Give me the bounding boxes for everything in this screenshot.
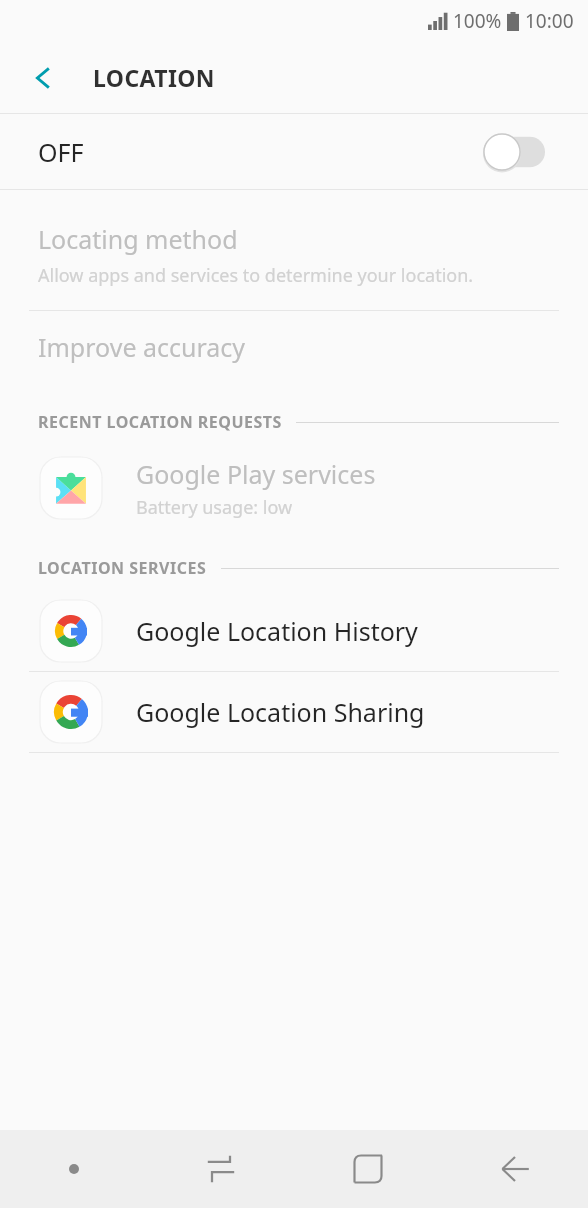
staticText: Locating method [38, 222, 238, 256]
staticText: Google Location History [136, 614, 418, 648]
button[interactable]: Google Location Sharing [0, 672, 588, 752]
button[interactable]: Locating method [0, 204, 588, 310]
staticText: Improve accuracy [38, 330, 246, 364]
staticText: 10:00 [525, 8, 574, 34]
staticText: LOCATION [93, 62, 215, 93]
staticText: Google Play services [136, 457, 376, 491]
staticText: Allow apps and services to determine you… [38, 263, 474, 288]
staticText: LOCATION SERVICES [38, 557, 207, 579]
staticText: OFF [38, 135, 84, 169]
button[interactable]: Home [294, 1130, 441, 1208]
button[interactable]: Recent apps [147, 1130, 294, 1208]
staticText: Google Location Sharing [136, 695, 425, 729]
button[interactable]: OFF [0, 114, 588, 189]
button[interactable]: Google Location History [0, 591, 588, 671]
button[interactable]: Google Play services [0, 445, 588, 531]
staticText: 100% [453, 8, 502, 34]
button[interactable]: Back [441, 1130, 588, 1208]
staticText: RECENT LOCATION REQUESTS [38, 411, 282, 433]
staticText: Battery usage: low [136, 495, 293, 520]
button[interactable]: Hide keyboard [0, 1130, 147, 1208]
button[interactable]: Back [18, 52, 70, 104]
button[interactable]: Improve accuracy [0, 311, 588, 383]
